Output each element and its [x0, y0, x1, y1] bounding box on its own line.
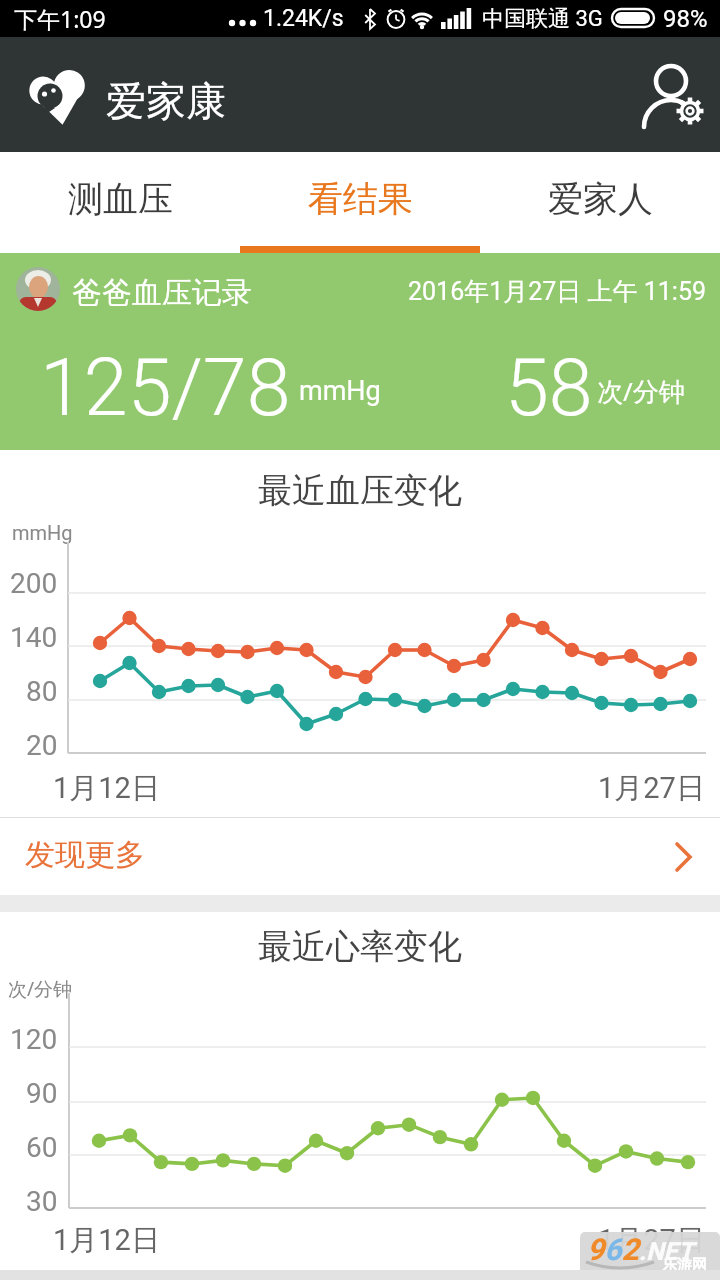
- staticText: 120: [10, 1023, 58, 1055]
- staticText: 爸爸血压记录: [72, 274, 252, 306]
- staticText: 下午1:09: [14, 3, 106, 34]
- staticText: 98%: [663, 5, 708, 33]
- staticText: 发现更多: [25, 836, 145, 870]
- staticText: 中国联通 3G: [482, 5, 603, 33]
- staticText: mmHg: [299, 375, 379, 407]
- staticText: 看结果: [308, 177, 413, 221]
- staticText: 200: [10, 567, 58, 599]
- staticText: 1月27日: [598, 1222, 705, 1256]
- staticText: 测血压: [68, 177, 173, 221]
- staticText: 最近心率变化: [258, 925, 462, 963]
- button[interactable]: 爱家人: [480, 152, 720, 246]
- button[interactable]: 看结果: [240, 152, 480, 246]
- button[interactable]: 测血压: [0, 152, 240, 246]
- staticText: 30: [26, 1185, 58, 1217]
- staticText: 90: [26, 1077, 58, 1109]
- staticText: 次/分钟: [8, 976, 73, 1000]
- staticText: 60: [26, 1131, 58, 1163]
- staticText: 1月12日: [53, 770, 160, 804]
- staticText: mmHg: [12, 521, 72, 544]
- staticText: 20: [26, 729, 58, 761]
- staticText: 爱家人: [548, 177, 653, 221]
- staticText: 125/78: [40, 342, 290, 435]
- staticText: 80: [26, 675, 58, 707]
- staticText: 1月27日: [598, 770, 705, 804]
- staticText: 58: [505, 342, 590, 435]
- staticText: 乐游网: [662, 1256, 707, 1274]
- button[interactable]: [634, 59, 710, 135]
- staticText: 爱家康: [106, 76, 226, 126]
- button[interactable]: 发现更多: [0, 818, 720, 895]
- staticText: 140: [10, 621, 58, 653]
- staticText: 次/分钟: [597, 373, 685, 405]
- staticText: 2016年1月27日 上午 11:59: [408, 276, 707, 306]
- staticText: 962.NET: [587, 1232, 694, 1267]
- staticText: 1.24K/s: [263, 5, 343, 32]
- staticText: 1月12日: [53, 1222, 160, 1256]
- staticText: 最近血压变化: [258, 469, 462, 507]
